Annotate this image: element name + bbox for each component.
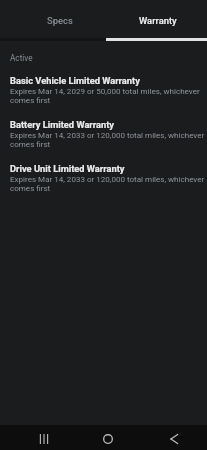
staticText: Drive Unit Limited Warranty — [10, 163, 125, 174]
staticText: Basic Vehicle Limited Warranty — [10, 75, 140, 86]
staticText: Expires Mar 14, 2033 or 120,000 total mi… — [10, 175, 206, 193]
button[interactable]: Home — [85, 425, 131, 450]
staticText: Specs — [47, 15, 73, 26]
button[interactable]: Warranty — [109, 3, 207, 38]
staticText: Active — [10, 54, 33, 63]
button[interactable]: Specs — [10, 3, 109, 38]
button[interactable]: Back — [151, 425, 197, 450]
staticText: Expires Mar 14, 2033 or 120,000 total mi… — [10, 131, 206, 149]
staticText: Battery Limited Warranty — [10, 119, 115, 130]
staticText: Warranty — [139, 15, 177, 26]
button[interactable]: Recent apps — [21, 425, 67, 450]
staticText: Expires Mar 14, 2029 or 50,000 total mil… — [10, 87, 206, 105]
